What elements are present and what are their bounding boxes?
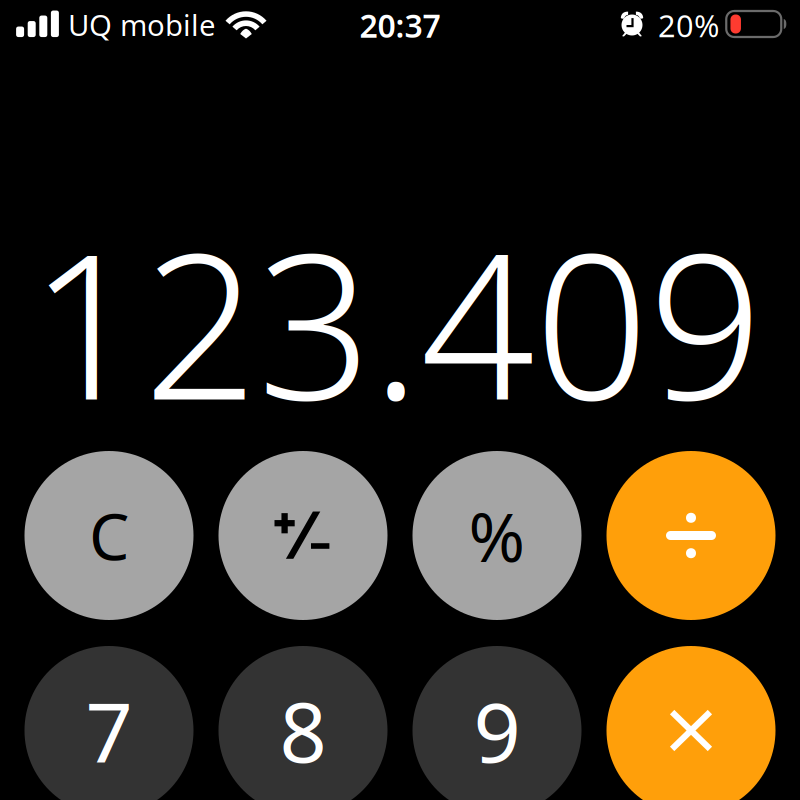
- button[interactable]: Clear: [24, 451, 193, 620]
- button[interactable]: Plus minus: [218, 451, 387, 620]
- button[interactable]: Percent: [412, 451, 581, 620]
- staticText: %: [468, 490, 525, 581]
- staticText: C: [89, 493, 129, 578]
- staticText: 7: [85, 676, 132, 785]
- button[interactable]: Multiply: [606, 646, 775, 800]
- staticText: 20:37: [359, 4, 440, 47]
- staticText: UQ mobile: [68, 5, 216, 44]
- button[interactable]: 9: [412, 646, 581, 800]
- button[interactable]: Divide: [606, 451, 775, 620]
- staticText: 20%: [658, 5, 719, 46]
- button[interactable]: 8: [218, 646, 387, 800]
- staticText: 9: [473, 676, 520, 785]
- button[interactable]: 7: [24, 646, 193, 800]
- staticText: 8: [279, 676, 326, 785]
- staticText: 123.409: [29, 189, 762, 455]
